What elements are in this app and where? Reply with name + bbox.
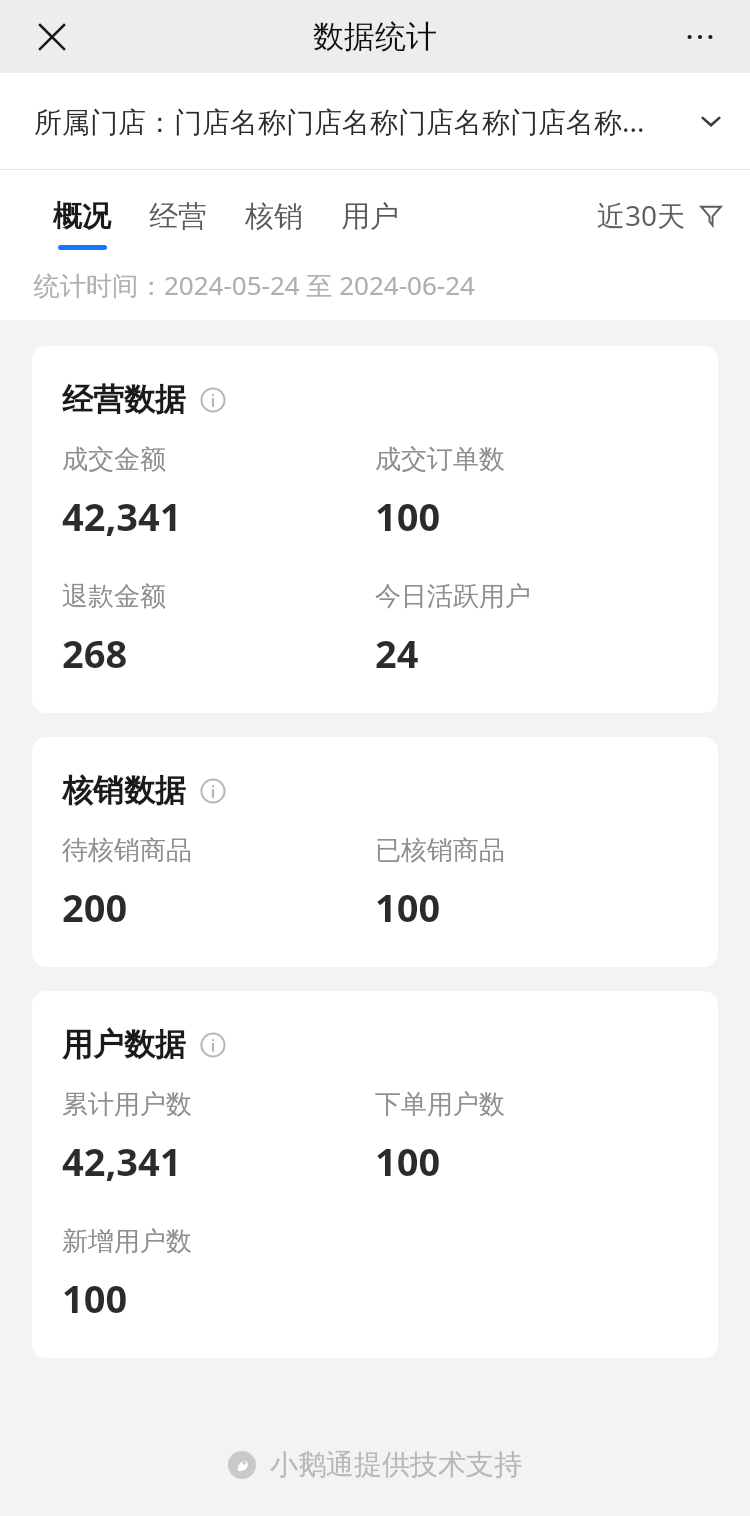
staticText: 今日活跃用户 [375, 580, 531, 613]
staticText: 下单用户数 [375, 1088, 505, 1121]
staticText: 累计用户数 [62, 1088, 192, 1121]
button[interactable]: 说明 [198, 776, 228, 806]
button[interactable]: 近30天 [597, 196, 724, 234]
staticText: 100 [62, 1272, 128, 1324]
button[interactable]: 说明 [198, 1030, 228, 1060]
staticText: 24 [375, 627, 419, 679]
staticText: 268 [62, 627, 128, 679]
button[interactable]: 核销数据 [32, 737, 718, 967]
button[interactable]: 更多 [672, 9, 728, 65]
staticText: 核销数据 [62, 771, 186, 810]
button[interactable]: 关闭 [24, 9, 80, 65]
staticText: 概况 [53, 198, 111, 235]
staticText: 数据统计 [313, 17, 437, 56]
staticText: 所属门店：门店名称门店名称门店名称门店名称... [34, 102, 688, 140]
staticText: 100 [375, 490, 441, 542]
button[interactable]: 概况 [34, 170, 130, 250]
staticText: 退款金额 [62, 580, 166, 613]
button[interactable]: 说明 [198, 385, 228, 415]
button[interactable]: 用户 [322, 170, 418, 245]
staticText: 42,341 [62, 490, 182, 542]
staticText: 成交金额 [62, 443, 166, 476]
staticText: 42,341 [62, 1135, 182, 1187]
button[interactable]: 经营数据 [32, 346, 718, 713]
staticText: 100 [375, 881, 441, 933]
staticText: 经营数据 [62, 380, 186, 419]
staticText: 200 [62, 881, 128, 933]
staticText: 新增用户数 [62, 1225, 192, 1258]
staticText: 100 [375, 1135, 441, 1187]
staticText: 经营 [149, 198, 207, 235]
staticText: 已核销商品 [375, 834, 505, 867]
staticText: 用户数据 [62, 1025, 186, 1064]
button[interactable]: 用户数据 [32, 991, 718, 1358]
button[interactable]: 核销 [226, 170, 322, 245]
staticText: 用户 [341, 198, 399, 235]
button[interactable]: 所属门店：门店名称门店名称门店名称门店名称... [0, 73, 750, 169]
staticText: 成交订单数 [375, 443, 505, 476]
staticText: 统计时间：2024-05-24 至 2024-06-24 [34, 267, 475, 303]
staticText: 近30天 [597, 196, 686, 234]
staticText: 小鹅通提供技术支持 [270, 1447, 522, 1482]
staticText: 核销 [245, 198, 303, 235]
staticText: 待核销商品 [62, 834, 192, 867]
button[interactable]: 经营 [130, 170, 226, 245]
